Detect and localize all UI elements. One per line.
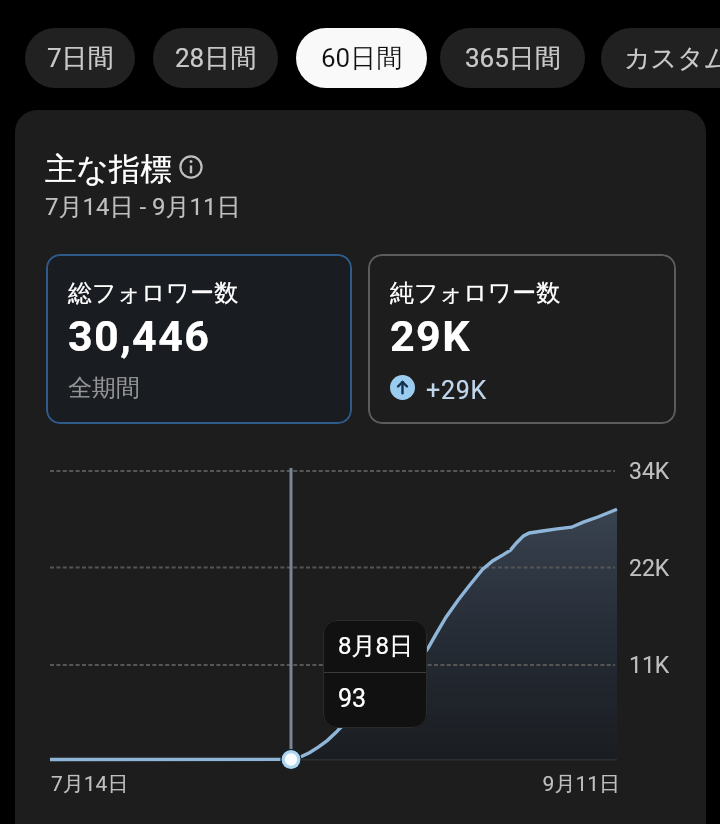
button[interactable]: 28日間 bbox=[153, 28, 278, 88]
staticText: 8月8日 bbox=[338, 631, 413, 661]
staticText: 29K bbox=[390, 311, 471, 361]
staticText: 30,446 bbox=[68, 311, 211, 361]
staticText: 総フォロワー数 bbox=[68, 278, 239, 308]
button[interactable]: 365日間 bbox=[440, 28, 585, 88]
staticText: +29K bbox=[426, 376, 487, 405]
staticText: 7月14日 - 9月11日 bbox=[45, 192, 241, 222]
staticText: 11K bbox=[629, 652, 670, 679]
staticText: 93 bbox=[338, 684, 367, 713]
staticText: 60日間 bbox=[321, 42, 403, 75]
staticText: 34K bbox=[629, 458, 670, 485]
button[interactable]: 指標の詳細 bbox=[179, 155, 203, 179]
staticText: 純フォロワー数 bbox=[390, 278, 561, 308]
button[interactable]: 7日間 bbox=[25, 28, 135, 88]
button[interactable]: 総フォロワー数 bbox=[46, 254, 352, 424]
staticText: 22K bbox=[629, 555, 670, 582]
button[interactable]: 8月8日 bbox=[323, 620, 427, 728]
button[interactable]: 60日間 bbox=[296, 28, 427, 88]
button[interactable]: カスタム bbox=[601, 28, 720, 88]
staticText: 7日間 bbox=[47, 42, 114, 75]
staticText: 9月11日 bbox=[420, 771, 620, 797]
staticText: 365日間 bbox=[465, 42, 561, 75]
button[interactable]: 純フォロワー数 bbox=[368, 254, 676, 424]
staticText: 主な指標 bbox=[45, 150, 172, 190]
staticText: 28日間 bbox=[175, 42, 257, 75]
staticText: 全期間 bbox=[68, 373, 140, 403]
staticText: 7月14日 bbox=[51, 771, 129, 797]
staticText: カスタム bbox=[624, 42, 720, 75]
